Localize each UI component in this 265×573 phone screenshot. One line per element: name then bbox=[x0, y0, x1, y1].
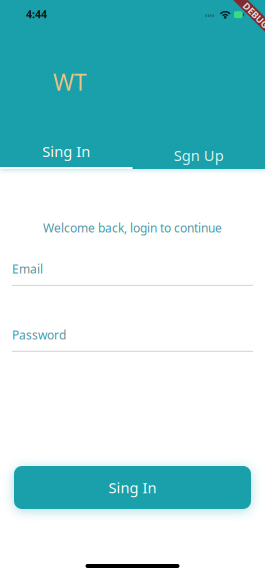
staticText: DEBUG bbox=[241, 6, 265, 19]
staticText: Sing In bbox=[42, 141, 90, 161]
staticText: Sgn Up bbox=[174, 145, 224, 165]
staticText: WT bbox=[53, 67, 87, 97]
button[interactable]: Sing In bbox=[0, 133, 132, 169]
staticText: Sing In bbox=[108, 478, 156, 497]
button[interactable]: Sgn Up bbox=[132, 133, 265, 169]
staticText: 4:44 bbox=[26, 7, 47, 21]
staticText: Email bbox=[12, 261, 43, 277]
staticText: Password bbox=[12, 327, 66, 343]
button[interactable]: Sing In bbox=[14, 466, 251, 509]
staticText: Welcome back, login to continue bbox=[43, 220, 222, 236]
